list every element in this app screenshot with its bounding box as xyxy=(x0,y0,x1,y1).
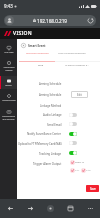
button[interactable]: On xyxy=(69,132,77,136)
button[interactable]: Off xyxy=(69,113,77,117)
staticText: Application Display xyxy=(3,66,15,72)
button[interactable]: A->1 xyxy=(71,169,80,172)
staticText: Arming Schedule xyxy=(39,82,62,86)
staticText: Arming Schedule a... xyxy=(65,63,90,66)
staticText: Arming Schedule xyxy=(39,93,62,97)
button[interactable]: Back xyxy=(0,199,20,218)
staticText: Edit xyxy=(77,93,82,97)
staticText: Audio Linkage xyxy=(43,113,62,117)
staticText: Tracking Linkage xyxy=(39,152,62,156)
button[interactable]: Line Crossing Detection xyxy=(58,50,86,55)
button[interactable]: Maintenance and Security xyxy=(0,107,17,123)
button[interactable]: Tabs xyxy=(60,199,80,218)
button[interactable]: 192.168.0.219 xyxy=(4,15,96,26)
staticText: Send Email xyxy=(47,123,62,127)
button[interactable]: Arming Schedule a... xyxy=(65,62,90,67)
staticText: A->2 xyxy=(86,169,91,172)
button[interactable]: Live View xyxy=(0,43,17,56)
staticText: VISION xyxy=(13,30,32,37)
button[interactable]: Search xyxy=(0,76,17,89)
button[interactable]: Forward xyxy=(20,199,40,218)
staticText: Notify Surveillance Center xyxy=(27,132,62,136)
staticText: Live View xyxy=(4,51,14,54)
button[interactable]: Off xyxy=(69,122,77,126)
button[interactable]: Edit xyxy=(71,91,88,98)
staticText: A->1 xyxy=(75,169,80,172)
button[interactable]: Home xyxy=(40,199,60,218)
staticText: Smart Event xyxy=(28,44,46,48)
button[interactable]: Reload xyxy=(86,16,95,25)
staticText: 192.168.0.219 xyxy=(37,18,67,24)
button[interactable]: Select All xyxy=(71,161,85,164)
button[interactable]: Rule xyxy=(38,62,44,67)
staticText: Linkage Method xyxy=(40,104,62,108)
button[interactable]: Configuration xyxy=(0,91,17,104)
staticText: Upload to FTP/Memory Card/NAS xyxy=(18,142,62,146)
button[interactable]: Off xyxy=(69,141,77,145)
staticText: Configuration xyxy=(2,99,16,102)
button[interactable]: Intrusion Detection xyxy=(26,50,49,55)
staticText: Rule xyxy=(38,63,44,66)
button[interactable]: Save xyxy=(86,185,99,192)
button[interactable]: On xyxy=(69,151,77,155)
staticText: 9:43 xyxy=(4,3,13,9)
staticText: Line Crossing Detection xyxy=(58,51,86,54)
button[interactable]: A->2 xyxy=(82,169,91,172)
button[interactable]: More options xyxy=(80,199,100,218)
staticText: Select All xyxy=(75,161,85,164)
staticText: Maintenance and Security xyxy=(2,115,15,121)
staticText: Intrusion Detection xyxy=(26,51,49,54)
staticText: Trigger Alarm Output xyxy=(33,162,62,166)
staticText: Save xyxy=(90,187,96,191)
staticText: Search xyxy=(5,84,12,87)
button[interactable]: Smart Event xyxy=(21,43,46,48)
button[interactable]: Application Display xyxy=(0,58,17,74)
